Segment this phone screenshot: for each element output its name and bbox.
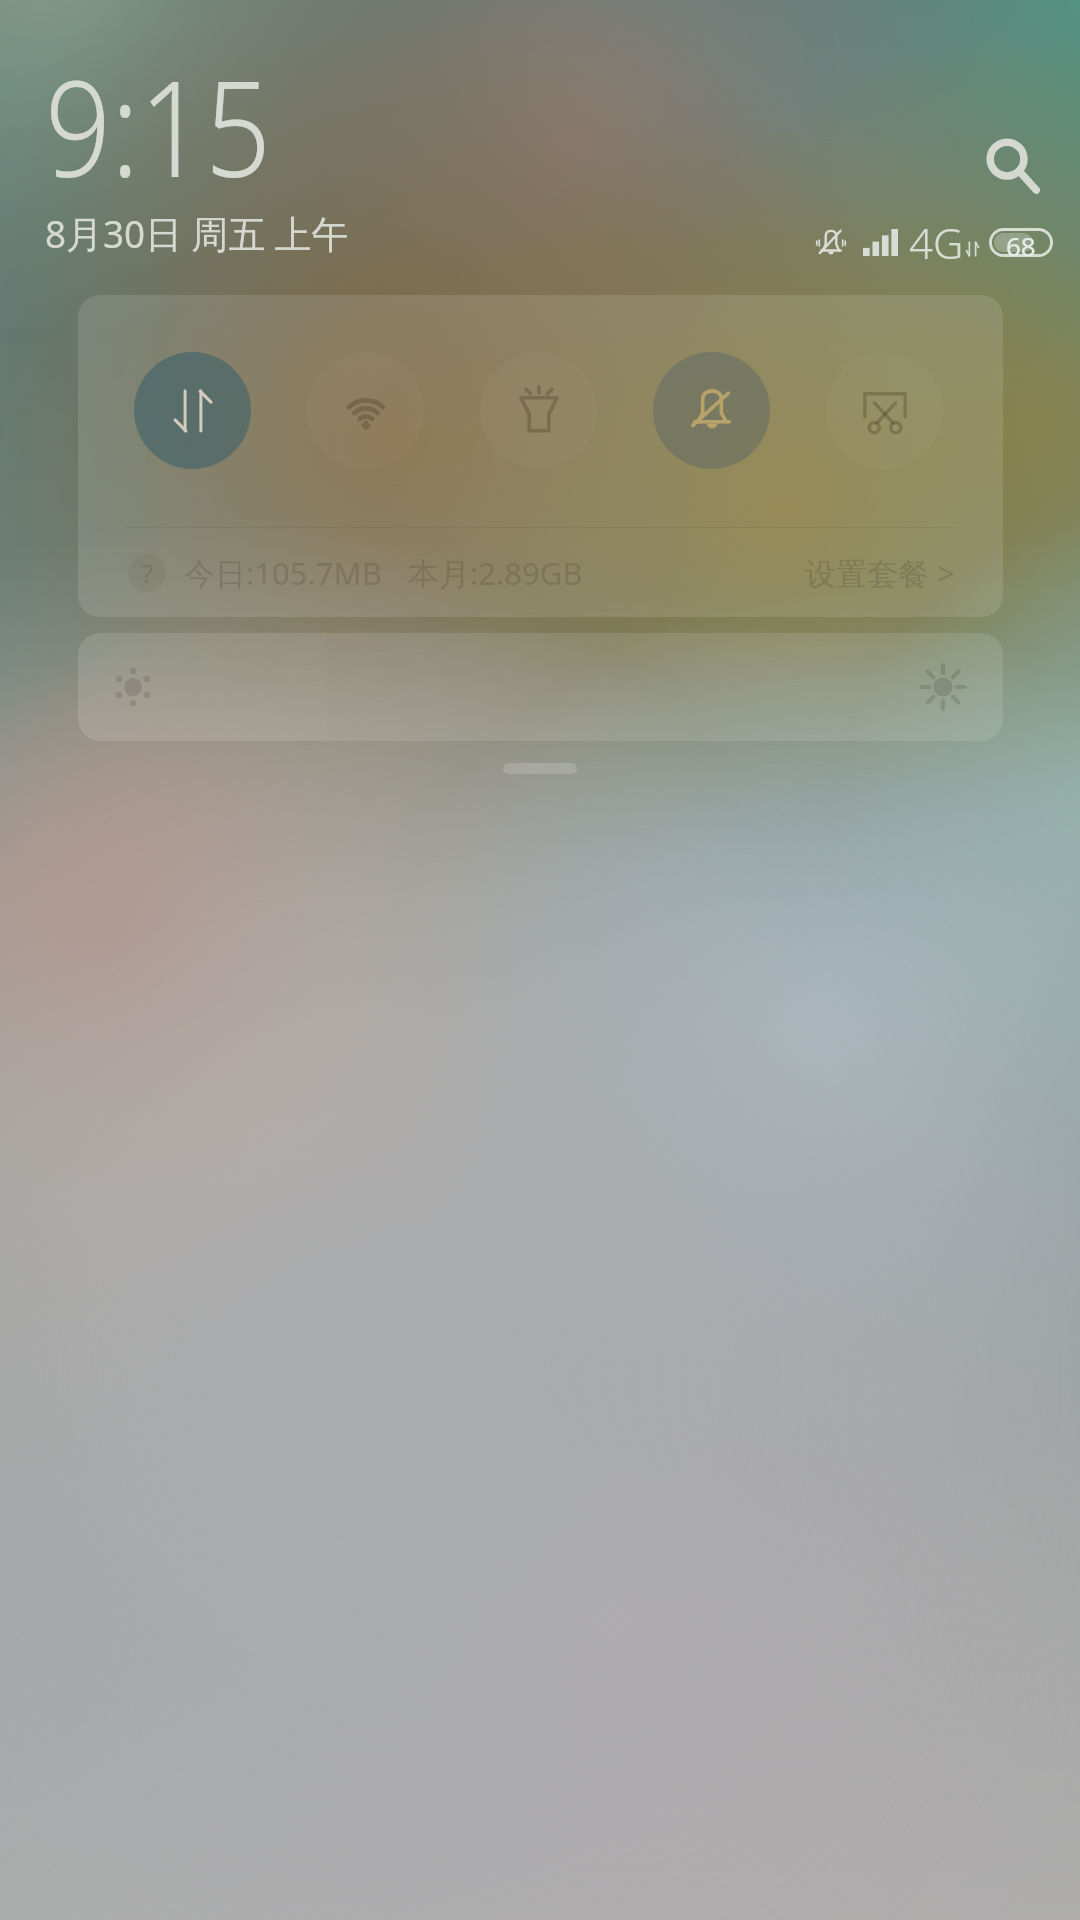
staticText: ?	[142, 556, 153, 590]
button[interactable]: Search	[977, 129, 1039, 191]
button[interactable]: Mobile data	[134, 352, 251, 469]
button[interactable]: Brightness	[78, 633, 1003, 741]
staticText: 4G	[909, 214, 964, 271]
button[interactable]: Silent mode	[653, 352, 770, 469]
staticText: 8月30日 周五 上午	[45, 207, 349, 259]
staticText: 9:15	[45, 36, 272, 216]
button[interactable]: Screenshot	[826, 352, 943, 469]
staticText: 68	[1006, 228, 1036, 257]
staticText: 设置套餐 >	[805, 552, 955, 594]
button[interactable]: Wi-Fi	[307, 352, 424, 469]
staticText: 本月:2.89GB	[408, 552, 583, 594]
button[interactable]: Flashlight	[480, 352, 597, 469]
button[interactable]: ?	[78, 528, 1003, 617]
staticText: 今日:105.7MB	[184, 552, 382, 594]
